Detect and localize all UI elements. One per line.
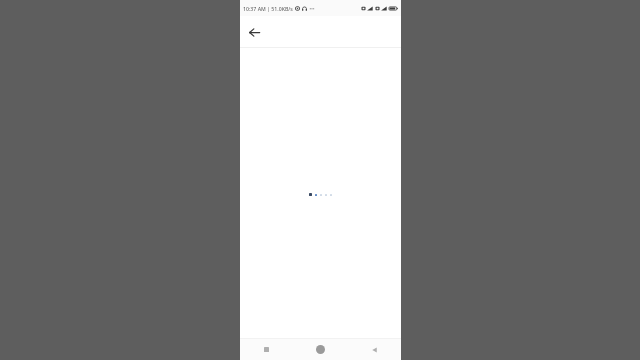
button[interactable]: Recent apps <box>240 339 293 360</box>
button[interactable]: Back <box>243 21 265 43</box>
staticText: 10:37 AM | 51.0KB/s <box>243 5 293 12</box>
button[interactable]: Back <box>347 339 401 360</box>
button[interactable]: Home <box>293 339 347 360</box>
